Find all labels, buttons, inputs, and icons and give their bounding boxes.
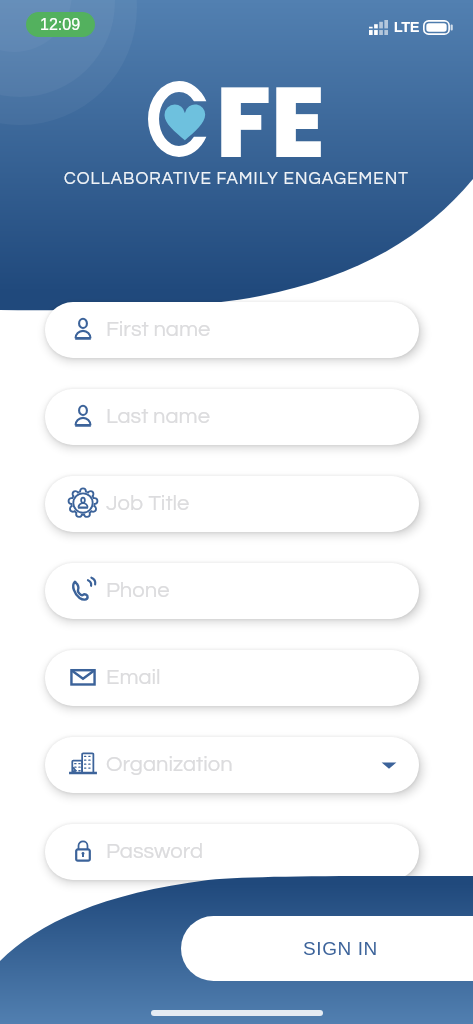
button[interactable]: Last name [45, 389, 419, 445]
button[interactable]: Email [45, 650, 419, 706]
button[interactable]: SIGN IN [181, 916, 473, 981]
staticText: Phone [106, 579, 170, 602]
button[interactable]: First name [45, 302, 419, 358]
staticText: Password [106, 840, 204, 863]
staticText: 12:09 [40, 16, 81, 34]
staticText: Email [106, 666, 161, 689]
button[interactable]: Phone [45, 563, 419, 619]
staticText: FE [216, 54, 325, 191]
button[interactable]: Organization [45, 737, 419, 793]
staticText: SIGN IN [303, 938, 378, 959]
staticText: First name [106, 318, 211, 341]
other: Select organization [381, 757, 397, 773]
button[interactable]: Job Title [45, 476, 419, 532]
staticText: COLLABORATIVE FAMILY ENGAGEMENT [64, 170, 409, 188]
staticText: Job Title [106, 492, 190, 515]
staticText: Organization [106, 753, 233, 776]
staticText: LTE [394, 19, 420, 35]
staticText: Last name [106, 405, 210, 428]
button[interactable]: Password [45, 824, 419, 880]
